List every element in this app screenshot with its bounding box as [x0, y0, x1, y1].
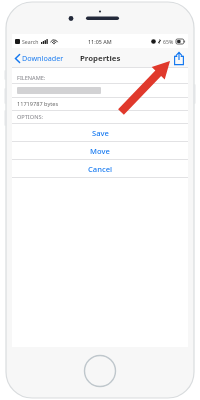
staticText: OPTIONS: — [17, 113, 43, 121]
button[interactable]: Downloader — [12, 50, 68, 66]
staticText: Downloader — [22, 53, 64, 63]
staticText: 11719787 bytes — [17, 100, 59, 108]
button[interactable]: Share — [170, 50, 188, 67]
staticText: Move — [90, 146, 110, 156]
button[interactable]: Save — [12, 124, 188, 141]
button[interactable]: Move — [12, 142, 188, 159]
staticText: Search — [22, 38, 39, 45]
staticText: Save — [92, 128, 109, 138]
staticText: 65% — [163, 38, 174, 45]
staticText: Cancel — [88, 164, 113, 174]
staticText: 11:05 AM — [88, 38, 112, 45]
staticText: FILENAME: — [17, 74, 46, 82]
staticText: Properties — [80, 53, 121, 64]
button[interactable]: Cancel — [12, 160, 188, 177]
